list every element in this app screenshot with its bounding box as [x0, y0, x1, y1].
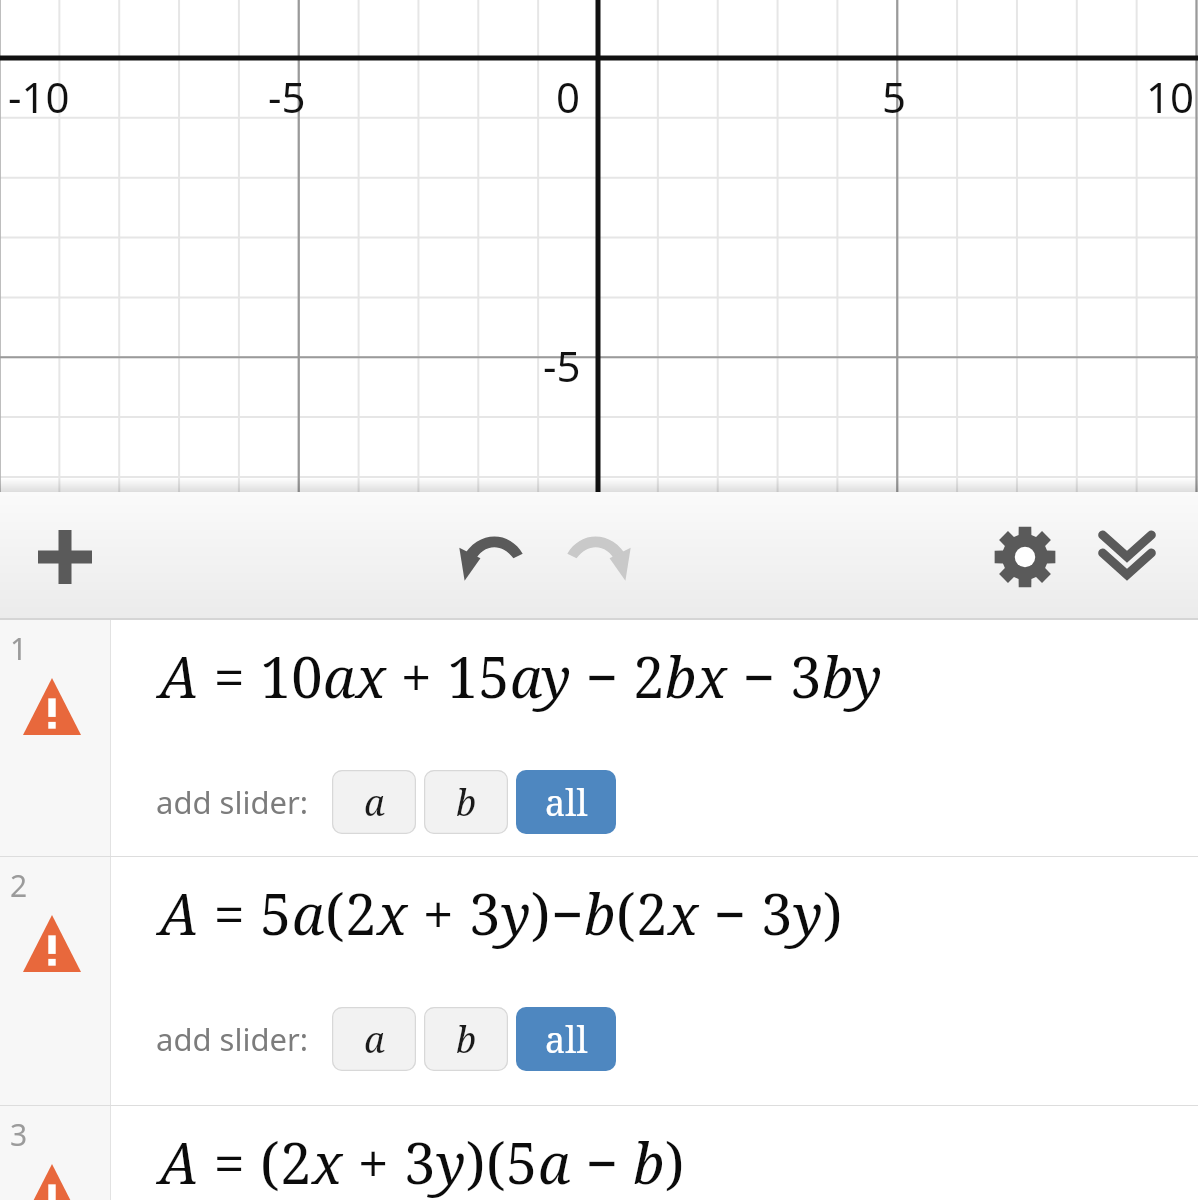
staticText: 10	[1146, 68, 1195, 125]
staticText: )	[466, 1124, 486, 1200]
staticText: -5	[268, 68, 306, 125]
staticText: b	[633, 1124, 665, 1200]
staticText: A	[159, 1124, 199, 1200]
staticText: 5	[506, 1124, 538, 1200]
button[interactable]: Expression 1 error	[0, 620, 110, 856]
staticText: x	[377, 875, 408, 951]
button[interactable]: all	[516, 1007, 616, 1071]
staticText: ay	[510, 638, 571, 714]
button[interactable]: Settings	[982, 514, 1068, 600]
staticText: add slider:	[156, 781, 309, 823]
staticText: 2	[10, 865, 28, 906]
staticText: −	[571, 638, 633, 714]
staticText: a	[364, 778, 385, 827]
staticText: b	[584, 875, 616, 951]
staticText: 2	[345, 875, 377, 951]
staticText: x	[312, 1124, 343, 1200]
staticText: -10	[8, 68, 70, 125]
staticText: )	[823, 875, 843, 951]
button[interactable]: a	[332, 770, 416, 834]
staticText: =	[199, 875, 260, 951]
staticText: (	[486, 1124, 506, 1200]
staticText: x	[668, 875, 699, 951]
staticText: add slider:	[156, 1018, 309, 1060]
staticText: −	[728, 638, 790, 714]
staticText: all	[545, 778, 588, 827]
staticText: bx	[665, 638, 728, 714]
staticText: a	[364, 1015, 385, 1064]
staticText: =	[199, 638, 260, 714]
staticText: A	[159, 875, 199, 951]
button[interactable]: b	[424, 770, 508, 834]
staticText: 5	[260, 875, 292, 951]
staticText: =	[199, 1124, 260, 1200]
staticText: ax	[323, 638, 386, 714]
staticText: 1	[10, 628, 28, 669]
staticText: -5	[543, 337, 581, 394]
button[interactable]: Collapse	[1084, 514, 1170, 600]
staticText: all	[545, 1015, 588, 1064]
staticText: 5	[882, 68, 907, 125]
staticText: 3	[404, 1124, 436, 1200]
staticText: (	[325, 875, 345, 951]
staticText: )	[531, 875, 551, 951]
button[interactable]: all	[516, 770, 616, 834]
staticText: +	[386, 638, 447, 714]
staticText: 0	[556, 68, 581, 125]
staticText: 3	[761, 875, 793, 951]
staticText: by	[822, 638, 882, 714]
staticText: y	[436, 1124, 466, 1200]
button[interactable]: Expression 2 error	[0, 857, 110, 1105]
staticText: 2	[636, 875, 668, 951]
staticText: y	[501, 875, 531, 951]
staticText: 3	[10, 1114, 28, 1155]
staticText: (	[616, 875, 636, 951]
staticText: a	[538, 1124, 571, 1200]
staticText: y	[793, 875, 823, 951]
staticText: b	[456, 778, 477, 827]
button[interactable]: Undo	[448, 514, 534, 600]
staticText: −	[571, 1124, 633, 1200]
staticText: 2	[633, 638, 665, 714]
button[interactable]: Add expression	[22, 514, 108, 600]
staticText: A	[159, 638, 199, 714]
staticText: 15	[447, 638, 510, 714]
staticText: +	[343, 1124, 404, 1200]
button[interactable]: Redo	[556, 514, 642, 600]
staticText: 2	[280, 1124, 312, 1200]
staticText: )	[665, 1124, 685, 1200]
button[interactable]: Expression 3 error	[0, 1106, 110, 1200]
staticText: −	[699, 875, 761, 951]
staticText: (	[260, 1124, 280, 1200]
staticText: b	[456, 1015, 477, 1064]
staticText: 3	[790, 638, 822, 714]
staticText: +	[408, 875, 469, 951]
button[interactable]: a	[332, 1007, 416, 1071]
staticText: a	[292, 875, 325, 951]
staticText: −	[551, 875, 584, 951]
staticText: 10	[260, 638, 323, 714]
button[interactable]: b	[424, 1007, 508, 1071]
staticText: 3	[469, 875, 501, 951]
